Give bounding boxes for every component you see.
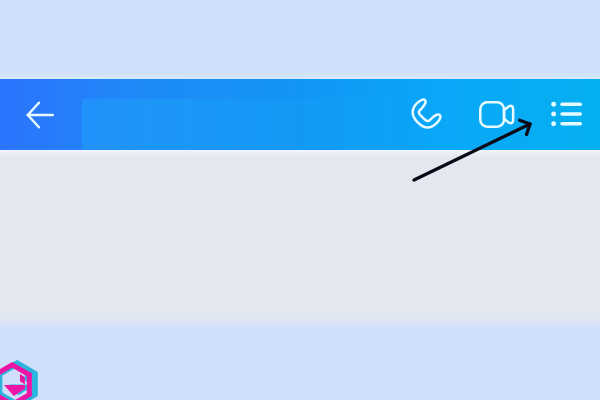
button[interactable]: Menu [543,91,589,137]
button[interactable]: Video call [473,91,519,137]
button[interactable]: Call [402,92,448,138]
button[interactable]: Back [17,92,63,138]
